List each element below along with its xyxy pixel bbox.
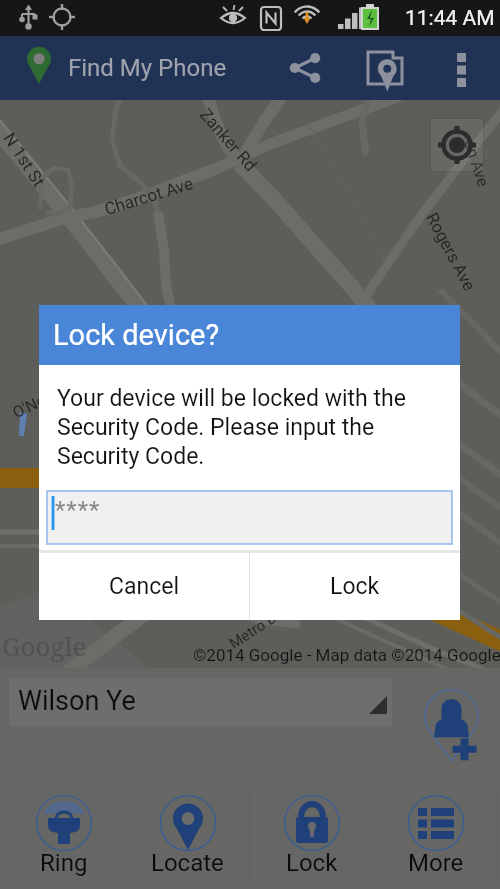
- staticText: on Ave: [460, 137, 493, 190]
- button[interactable]: Cancel: [39, 553, 249, 620]
- button[interactable]: Share: [277, 40, 333, 96]
- staticText: More: [408, 849, 464, 877]
- staticText: Charcot Ave: [102, 173, 196, 219]
- staticText: Wilson Ye: [18, 685, 136, 717]
- staticText: N 1st St: [0, 129, 49, 191]
- button[interactable]: Locate: [126, 788, 249, 882]
- button[interactable]: More: [374, 788, 497, 882]
- staticText: Ring: [40, 849, 88, 877]
- button[interactable]: Ring: [3, 788, 125, 882]
- staticText: Zanker Rd: [196, 104, 261, 176]
- staticText: Lock device?: [53, 318, 220, 352]
- staticText: Your device will be locked with the Secu…: [57, 385, 446, 470]
- staticText: Google: [2, 628, 87, 663]
- button[interactable]: Saved places: [357, 40, 413, 96]
- button[interactable]: ****: [47, 491, 452, 544]
- button[interactable]: Wilson Ye: [9, 678, 392, 726]
- staticText: Lock: [330, 573, 380, 600]
- staticText: Metro Dr: [226, 605, 285, 653]
- staticText: Rogers Ave: [422, 209, 480, 295]
- staticText: ****: [55, 496, 101, 524]
- button[interactable]: Lock: [250, 553, 460, 620]
- staticText: 11:44 AM: [405, 6, 495, 31]
- button[interactable]: More options: [438, 45, 484, 91]
- staticText: Find My Phone: [68, 54, 227, 82]
- button[interactable]: My location: [430, 118, 484, 172]
- staticText: Locate: [151, 849, 224, 877]
- staticText: Cancel: [109, 573, 180, 600]
- staticText: ©2014 Google - Map data ©2014 Google: [193, 645, 500, 665]
- button[interactable]: Add person: [420, 686, 484, 768]
- staticText: O'Nel: [10, 389, 52, 422]
- button[interactable]: Lock: [250, 788, 373, 882]
- staticText: Lock: [286, 849, 338, 877]
